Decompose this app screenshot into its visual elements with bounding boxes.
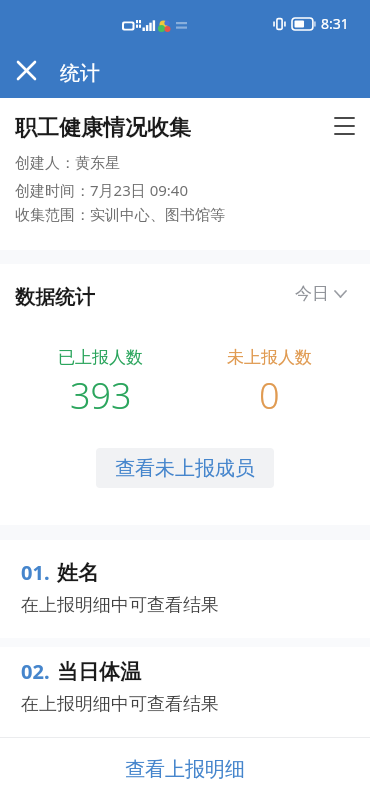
staticText: 8:31 [321, 14, 349, 33]
staticText: 职工健康情况收集 [15, 114, 325, 142]
staticText: 姓名 [57, 560, 99, 586]
staticText: 未上报人数 [227, 347, 312, 368]
staticText: 数据统计 [15, 285, 291, 310]
staticText: 393 [70, 371, 132, 420]
staticText: 01. [21, 559, 50, 586]
staticText: 已上报人数 [58, 347, 143, 368]
staticText: 在上报明细中可查看结果 [21, 693, 219, 716]
button[interactable]: 查看上报明细 [0, 738, 370, 800]
button[interactable]: 01. [0, 540, 370, 638]
button[interactable]: Menu [325, 107, 363, 145]
staticText: 查看未上报成员 [115, 456, 255, 481]
staticText: 收集范围：实训中心、图书馆等 [15, 206, 225, 225]
staticText: 查看上报明细 [125, 757, 245, 782]
staticText: 创建时间：7月23日 09:40 [15, 180, 188, 200]
button[interactable]: 02. [0, 647, 370, 737]
staticText: 02. [21, 658, 50, 685]
staticText: 今日 [295, 283, 329, 304]
button[interactable]: Close [6, 50, 46, 90]
staticText: 0 [259, 371, 280, 420]
staticText: 在上报明细中可查看结果 [21, 594, 219, 617]
button[interactable]: 查看未上报成员 [96, 448, 274, 488]
staticText: 当日体温 [57, 659, 141, 685]
button[interactable]: 今日 [291, 279, 350, 308]
staticText: 统计 [60, 61, 100, 86]
staticText: 创建人：黄东星 [15, 154, 120, 173]
